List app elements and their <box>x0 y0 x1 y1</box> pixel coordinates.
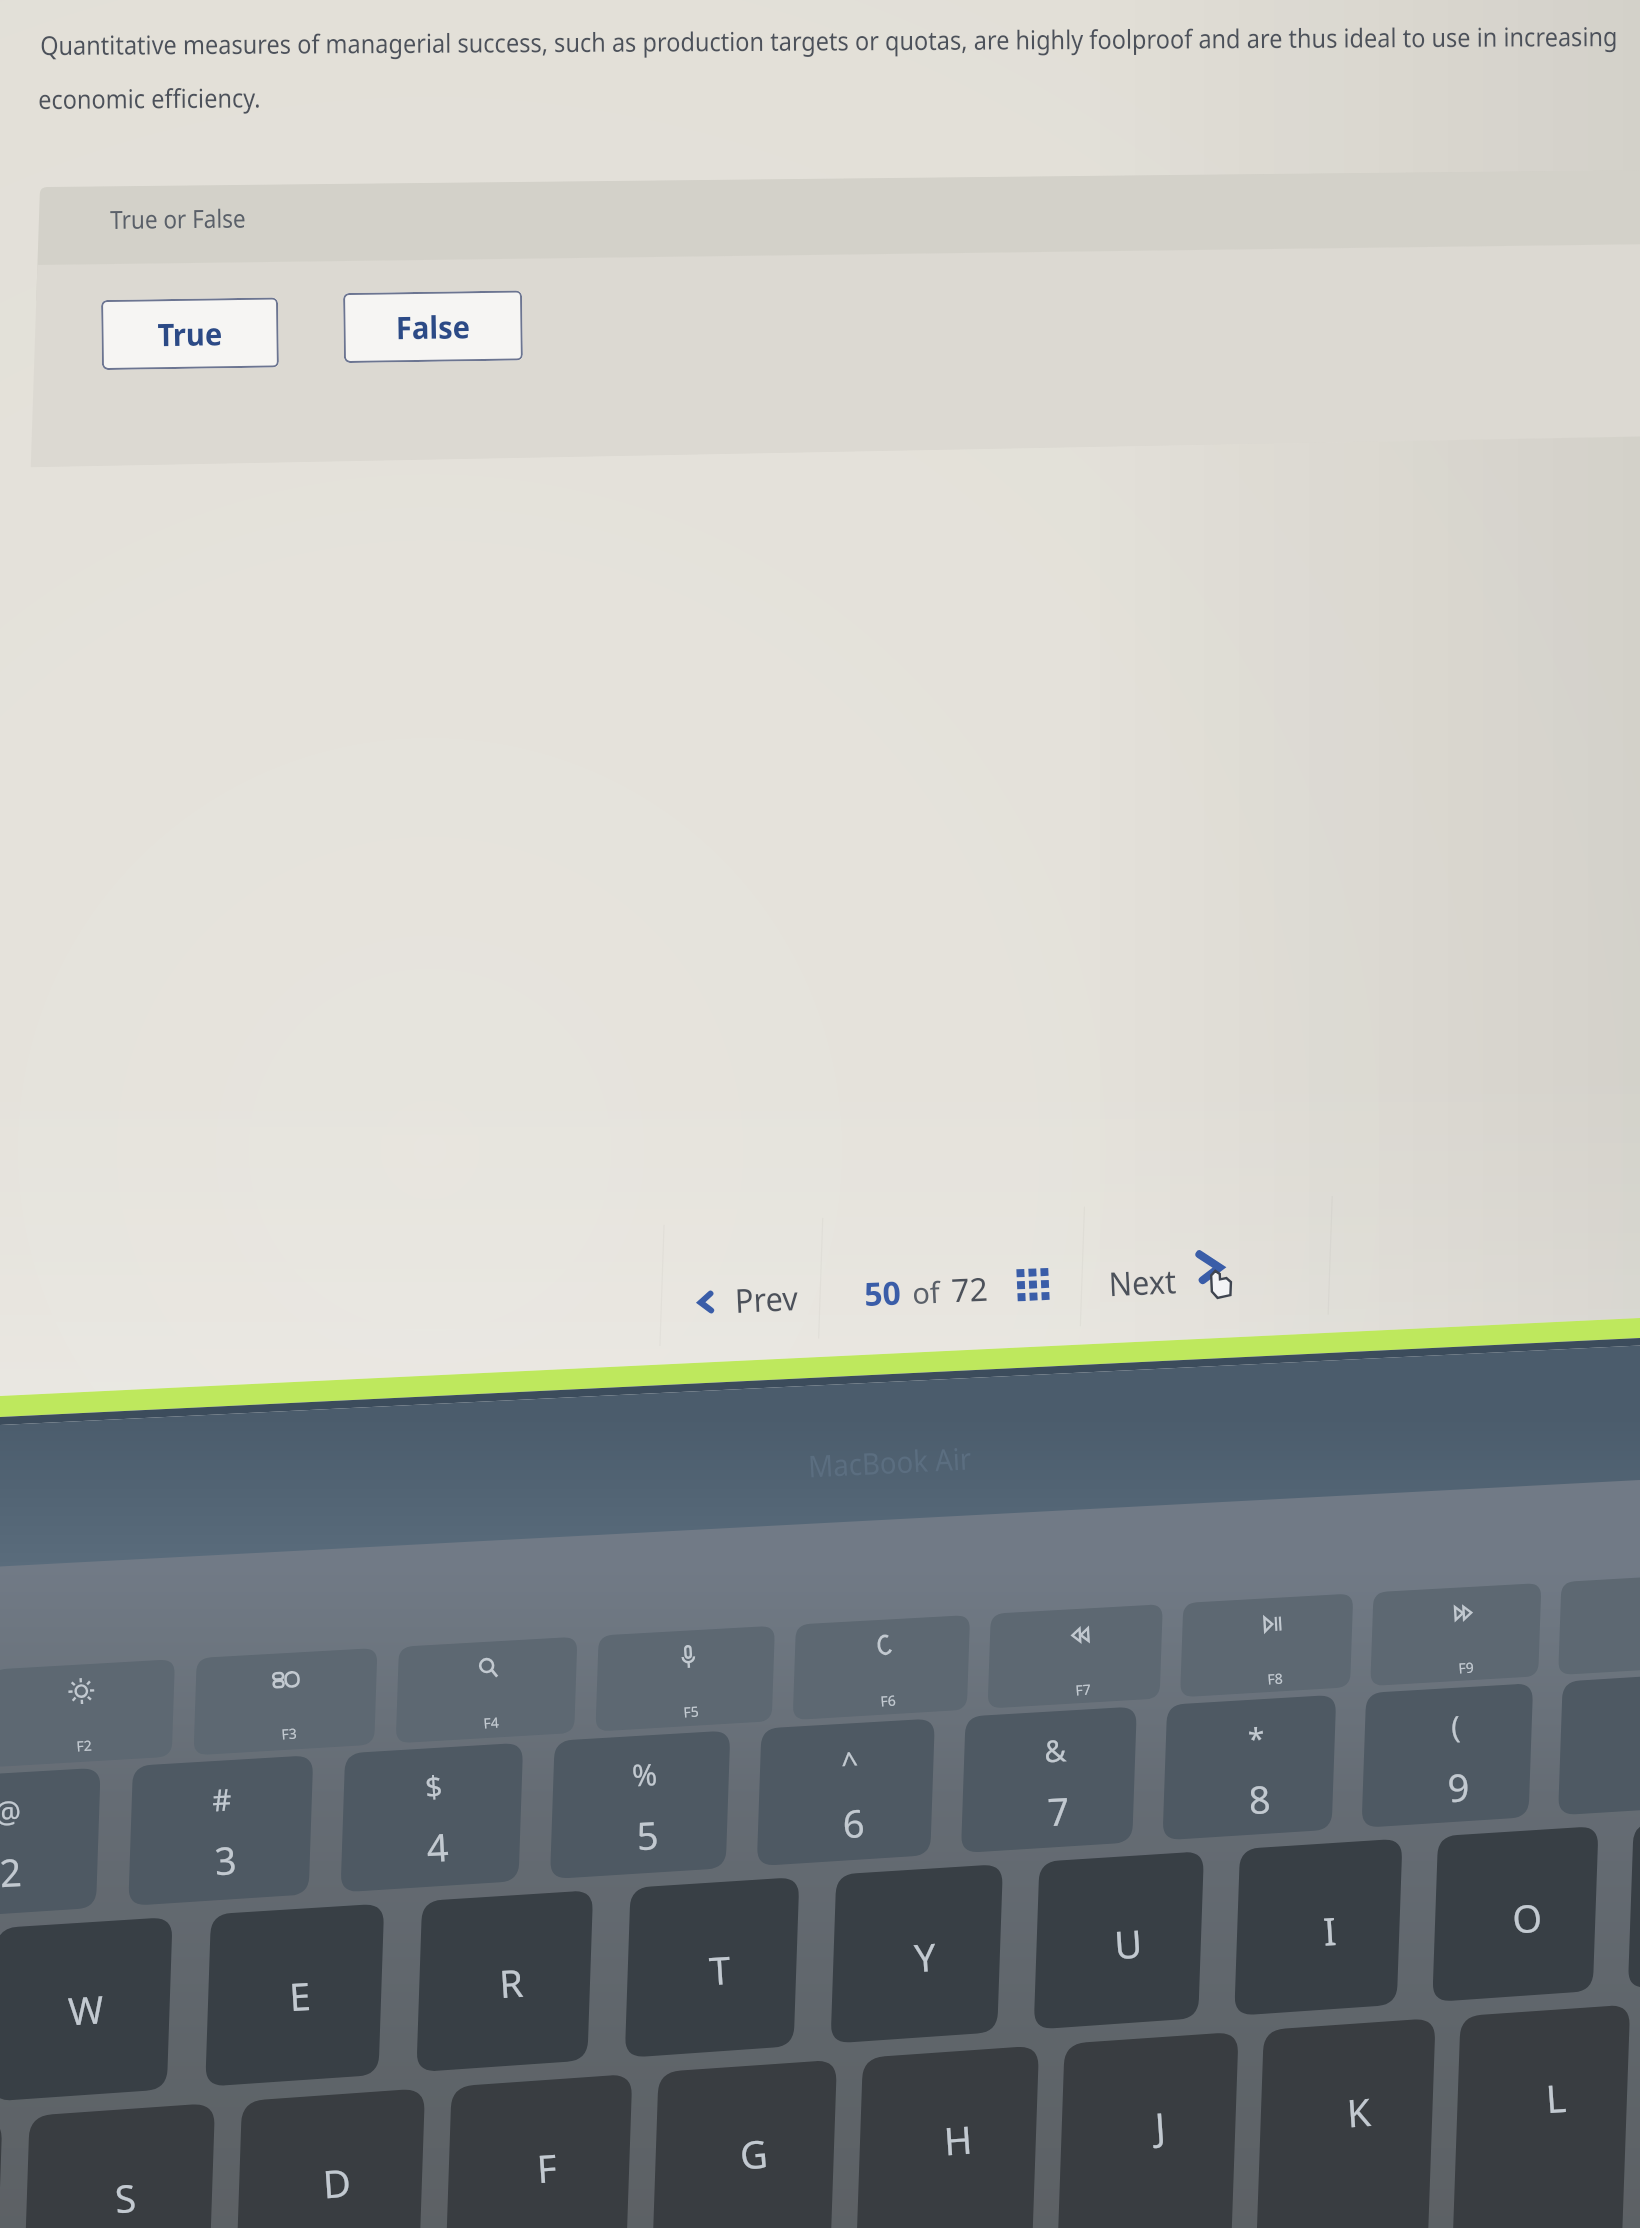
button[interactable]: All questions <box>1009 1260 1061 1313</box>
staticText: F8 <box>1267 1668 1284 1688</box>
staticText: Prev <box>734 1275 799 1323</box>
staticText: E <box>288 1969 313 2022</box>
staticText: % <box>631 1753 658 1795</box>
staticText: W <box>67 1982 106 2037</box>
staticText: J <box>1153 2099 1168 2152</box>
button[interactable]: True <box>101 297 279 370</box>
staticText: F5 <box>683 1701 700 1721</box>
staticText: & <box>1043 1729 1067 1771</box>
staticText: * <box>1247 1717 1266 1759</box>
staticText: ^ <box>840 1741 860 1783</box>
staticText: 9 <box>1446 1760 1471 1813</box>
staticText: F9 <box>1458 1657 1475 1677</box>
staticText: O <box>1511 1891 1544 1944</box>
staticText: ( <box>1450 1705 1461 1747</box>
staticText: F4 <box>483 1712 500 1732</box>
staticText: G <box>738 2127 770 2180</box>
staticText: of <box>911 1272 941 1312</box>
button[interactable]: False <box>343 290 523 363</box>
staticText: $ <box>424 1765 444 1807</box>
staticText: F3 <box>281 1723 298 1743</box>
staticText: U <box>1113 1917 1144 1970</box>
staticText: economic efficiency. <box>38 79 261 116</box>
staticText: 6 <box>841 1796 866 1849</box>
staticText: 7 <box>1046 1784 1071 1837</box>
staticText: D <box>321 2156 353 2209</box>
staticText: Y <box>913 1930 938 1983</box>
staticText: T <box>708 1943 733 1996</box>
staticText: K <box>1345 2085 1373 2138</box>
staticText: H <box>942 2113 975 2166</box>
staticText: 50 <box>863 1270 902 1316</box>
staticText: L <box>1544 2071 1568 2124</box>
staticText: # <box>211 1778 233 1820</box>
staticText: True <box>157 312 223 355</box>
staticText: S <box>113 2171 138 2224</box>
staticText: MacBook Air <box>807 1437 973 1487</box>
staticText: True or False <box>110 200 246 236</box>
staticText: Quantitative measures of managerial succ… <box>40 18 1618 62</box>
staticText: 3 <box>213 1833 238 1886</box>
staticText: F <box>535 2141 559 2194</box>
staticText: I <box>1322 1904 1338 1957</box>
staticText: F2 <box>76 1735 93 1755</box>
staticText: F6 <box>880 1690 897 1710</box>
staticText: Next <box>1108 1258 1177 1306</box>
staticText: F7 <box>1075 1679 1092 1699</box>
staticText: 5 <box>635 1808 660 1861</box>
staticText: R <box>498 1956 525 2009</box>
button[interactable]: Next <box>1099 1244 1254 1317</box>
button[interactable]: Prev <box>687 1269 808 1331</box>
staticText: 8 <box>1247 1772 1272 1825</box>
staticText: 2 <box>0 1845 23 1898</box>
staticText: 4 <box>425 1820 450 1873</box>
staticText: False <box>396 305 470 348</box>
staticText: 72 <box>950 1267 989 1312</box>
staticText: @ <box>0 1790 22 1832</box>
